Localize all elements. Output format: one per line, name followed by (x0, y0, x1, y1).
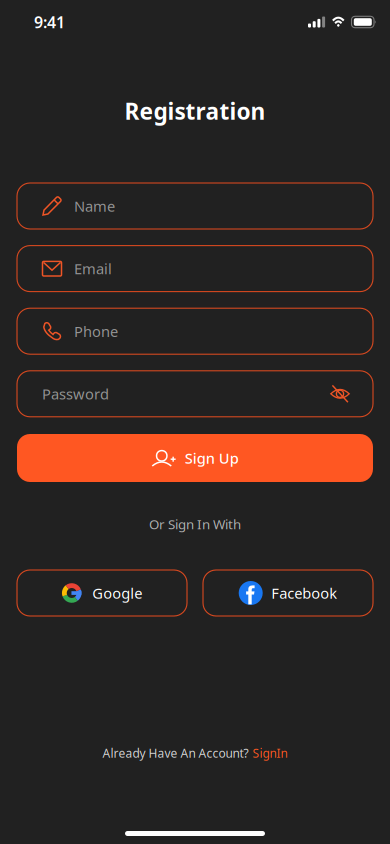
button[interactable]: Password (17, 371, 373, 417)
button[interactable]: Already Have An Account? (102, 746, 287, 760)
button[interactable]: Name (17, 183, 373, 229)
button[interactable]: Email (17, 246, 373, 292)
button[interactable]: Sign Up (17, 434, 373, 482)
staticText: Password (42, 384, 109, 404)
button[interactable]: Google (17, 570, 187, 616)
staticText: Name (74, 196, 115, 216)
staticText: SignIn (252, 745, 287, 761)
staticText: Registration (124, 96, 265, 126)
staticText: Facebook (271, 583, 337, 603)
staticText: Sign Up (185, 448, 239, 468)
button[interactable]: Phone (17, 308, 373, 354)
button[interactable]: Show password (320, 371, 360, 417)
staticText: Or Sign In With (149, 515, 241, 533)
staticText: Phone (74, 321, 118, 341)
staticText: Google (92, 583, 142, 603)
button[interactable]: Facebook (203, 570, 373, 616)
staticText: Already Have An Account? (102, 745, 248, 761)
staticText: Email (74, 259, 112, 278)
staticText: 9:41 (34, 11, 65, 33)
